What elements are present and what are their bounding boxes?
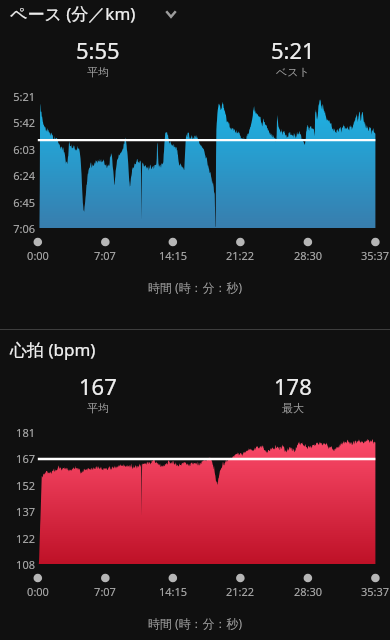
staticText: 7:07 (80, 584, 130, 599)
staticText: 0:00 (13, 248, 63, 263)
staticText: 0:00 (13, 584, 63, 599)
staticText: 122 (0, 531, 35, 546)
staticText: 7:07 (80, 248, 130, 263)
staticText: 5:42 (0, 115, 35, 130)
staticText: ベスト (276, 65, 310, 79)
staticText: 5:55 (76, 35, 120, 65)
staticText: 137 (0, 504, 35, 519)
staticText: 平均 (87, 65, 109, 79)
staticText: 14:15 (148, 584, 198, 599)
button[interactable]: Change metric (156, 0, 186, 29)
staticText: 時間 (時：分：秒) (0, 615, 390, 631)
staticText: 6:03 (0, 142, 35, 157)
staticText: 167 (0, 451, 35, 466)
staticText: 心拍 (bpm) (10, 338, 96, 361)
button[interactable]: 心拍 (bpm) (10, 338, 96, 361)
staticText: 時間 (時：分：秒) (0, 279, 390, 295)
staticText: 5:21 (0, 89, 35, 104)
staticText: 平均 (87, 401, 109, 415)
staticText: 6:24 (0, 168, 35, 183)
staticText: 181 (0, 425, 35, 440)
staticText: 7:06 (0, 221, 35, 236)
staticText: 最大 (282, 401, 304, 415)
staticText: 6:45 (0, 195, 35, 210)
staticText: 108 (0, 557, 35, 572)
staticText: 5:21 (271, 35, 315, 65)
staticText: 178 (274, 371, 312, 401)
staticText: 167 (79, 371, 117, 401)
staticText: 35:37 (350, 584, 390, 599)
staticText: 152 (0, 478, 35, 493)
staticText: 35:37 (350, 248, 390, 263)
staticText: 21:22 (215, 248, 265, 263)
button[interactable]: ペース (分／km) (10, 2, 136, 25)
staticText: 28:30 (283, 248, 333, 263)
staticText: ペース (分／km) (10, 2, 136, 25)
staticText: 21:22 (215, 584, 265, 599)
staticText: 14:15 (148, 248, 198, 263)
staticText: 28:30 (283, 584, 333, 599)
